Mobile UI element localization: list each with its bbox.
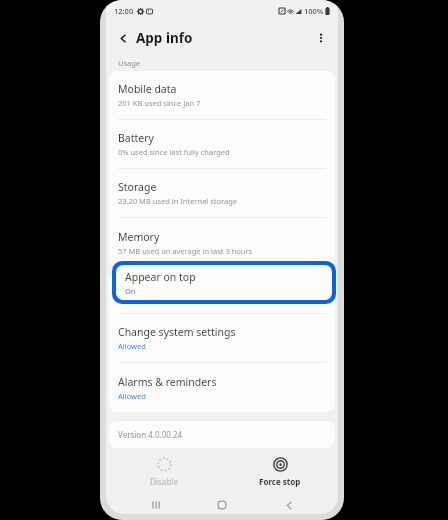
staticText: App info <box>136 29 193 47</box>
staticText: Allowed <box>118 341 146 351</box>
button[interactable]: Storage <box>109 169 335 218</box>
staticText: 23.20 MB used in Internal storage <box>118 196 238 206</box>
staticText: 12:00 <box>114 6 134 16</box>
button[interactable]: Change system settings <box>109 314 335 363</box>
button[interactable]: Back <box>272 496 306 514</box>
staticText: 57 MB used on average in last 3 hours <box>118 246 253 256</box>
button[interactable]: Disable <box>106 448 222 496</box>
staticText: 0% used since last fully charged <box>118 147 230 157</box>
button[interactable]: Appear on top <box>116 265 332 300</box>
staticText: On <box>125 286 136 296</box>
staticText: Memory <box>118 230 160 244</box>
button[interactable]: Force stop <box>222 448 338 496</box>
staticText: Force stop <box>259 476 301 487</box>
button[interactable]: Mobile data <box>109 71 335 120</box>
staticText: Battery <box>118 131 154 145</box>
staticText: 100% <box>304 6 324 16</box>
staticText: Change system settings <box>118 325 236 339</box>
staticText: Usage <box>118 58 141 68</box>
button[interactable]: Recent apps <box>139 496 173 514</box>
button[interactable]: Alarms & reminders <box>109 363 335 412</box>
button[interactable]: Back <box>112 27 134 49</box>
button[interactable]: Home <box>205 496 239 514</box>
button[interactable]: Battery <box>109 120 335 169</box>
staticText: Storage <box>118 180 157 194</box>
staticText: Allowed <box>118 391 146 401</box>
staticText: Version 4.0.00.24 <box>118 429 183 440</box>
staticText: Mobile data <box>118 82 177 96</box>
button[interactable]: Memory <box>109 218 335 267</box>
staticText: Appear on top <box>125 270 196 284</box>
staticText: Alarms & reminders <box>118 375 217 389</box>
staticText: Disable <box>150 476 179 487</box>
button[interactable]: More options <box>310 27 332 49</box>
staticText: 201 KB used since Jan 7 <box>118 98 201 108</box>
